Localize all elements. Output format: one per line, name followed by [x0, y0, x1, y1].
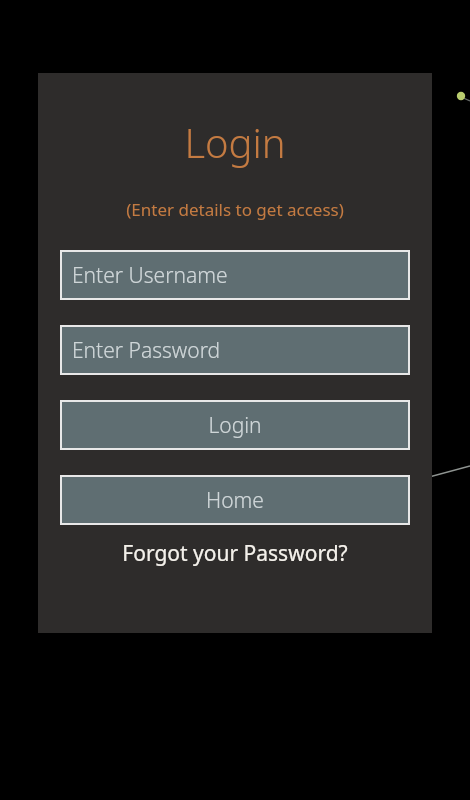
button[interactable]: Forgot your Password?	[60, 534, 410, 572]
staticText: Login	[208, 411, 262, 440]
button[interactable]: Login	[60, 400, 410, 450]
staticText: Login	[184, 115, 286, 169]
staticText: Forgot your Password?	[122, 539, 348, 568]
staticText: (Enter details to get access)	[126, 198, 344, 221]
staticText: Home	[206, 486, 264, 515]
button[interactable]: Home	[60, 475, 410, 525]
button[interactable]: Enter Password	[60, 325, 410, 375]
button[interactable]: Enter Username	[60, 250, 410, 300]
staticText: Enter Password	[72, 336, 221, 365]
staticText: Enter Username	[72, 261, 228, 290]
